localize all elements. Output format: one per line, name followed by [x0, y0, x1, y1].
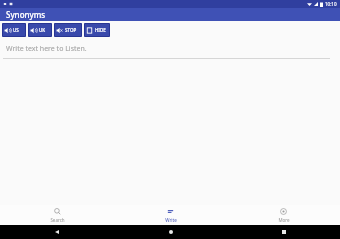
staticText: 10:10 [325, 1, 337, 7]
button[interactable]: Search [0, 205, 114, 225]
staticText: Synonyms [6, 9, 46, 20]
button[interactable]: Speak US [2, 23, 26, 37]
button[interactable]: Hide [84, 23, 110, 37]
button[interactable]: More [227, 205, 340, 225]
staticText: Write [165, 217, 177, 223]
button[interactable]: Speak UK [28, 23, 52, 37]
button[interactable]: Home [114, 225, 227, 239]
button[interactable]: Write [114, 205, 227, 225]
staticText: STOP [65, 27, 77, 33]
staticText: UK [39, 27, 46, 33]
button[interactable]: Back [0, 225, 114, 239]
staticText: US [13, 27, 19, 33]
staticText: Write text here to Listen. [6, 44, 87, 54]
staticText: HIDE [95, 27, 106, 33]
staticText: Search [50, 217, 65, 223]
button[interactable]: Stop [54, 23, 82, 37]
staticText: More [278, 217, 290, 223]
button[interactable]: Recents [227, 225, 340, 239]
